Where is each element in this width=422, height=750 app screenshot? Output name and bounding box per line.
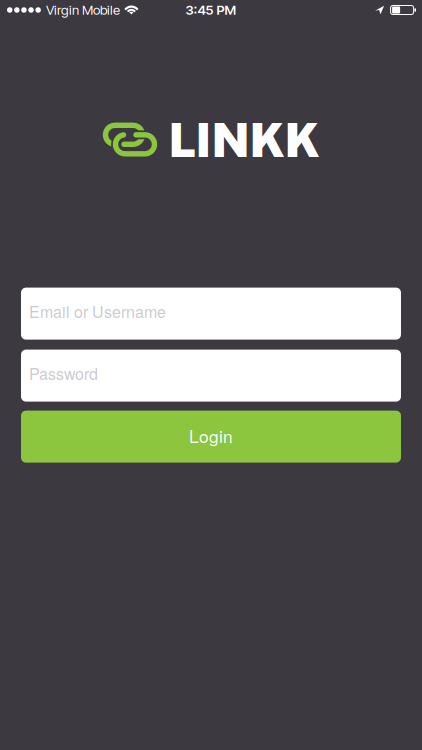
staticText: Password	[29, 362, 98, 385]
button[interactable]: Password	[21, 350, 401, 402]
staticText: Email or Username	[29, 300, 166, 323]
staticText: Login	[189, 423, 233, 448]
staticText: LINKK	[168, 112, 319, 168]
button[interactable]: Login	[21, 411, 401, 463]
button[interactable]: Email or Username	[21, 288, 401, 340]
staticText: 3:45 PM	[185, 2, 236, 18]
staticText: Virgin Mobile	[46, 2, 120, 18]
